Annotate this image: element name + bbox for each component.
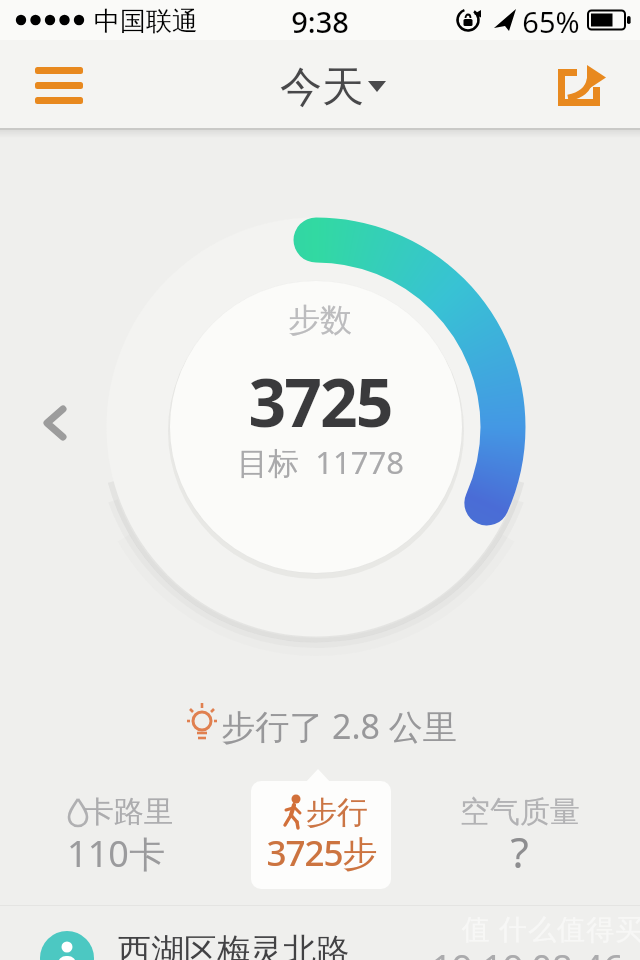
staticText: 步数 xyxy=(288,300,352,340)
button[interactable] xyxy=(250,48,400,120)
staticText: 9:38 xyxy=(291,2,349,41)
staticText: ? xyxy=(510,823,529,880)
staticText: 19:19 xyxy=(431,943,524,960)
button[interactable] xyxy=(0,910,640,960)
staticText: 空气质量 xyxy=(460,793,580,831)
staticText: 步行 xyxy=(306,793,368,832)
staticText: 值 什么值得买 xyxy=(462,909,640,947)
staticText: 目标 11778 xyxy=(237,441,404,483)
button[interactable] xyxy=(40,780,190,880)
staticText: 65% xyxy=(522,2,580,41)
staticText: 今天 xyxy=(280,61,364,114)
button[interactable] xyxy=(251,781,391,889)
staticText: 08:46 xyxy=(531,943,624,960)
staticText: 中国联通 xyxy=(94,5,198,38)
staticText: 卡路里 xyxy=(84,793,174,831)
staticText: 3725 xyxy=(248,356,392,436)
button[interactable] xyxy=(450,780,600,880)
button[interactable] xyxy=(30,395,80,451)
staticText: 步行了 2.8 公里 xyxy=(221,703,457,749)
staticText: 110卡 xyxy=(67,829,165,878)
button[interactable] xyxy=(545,55,620,115)
staticText: 3725步 xyxy=(266,829,377,877)
staticText: 西湖区梅灵北路 xyxy=(118,930,349,960)
button[interactable] xyxy=(20,52,100,118)
